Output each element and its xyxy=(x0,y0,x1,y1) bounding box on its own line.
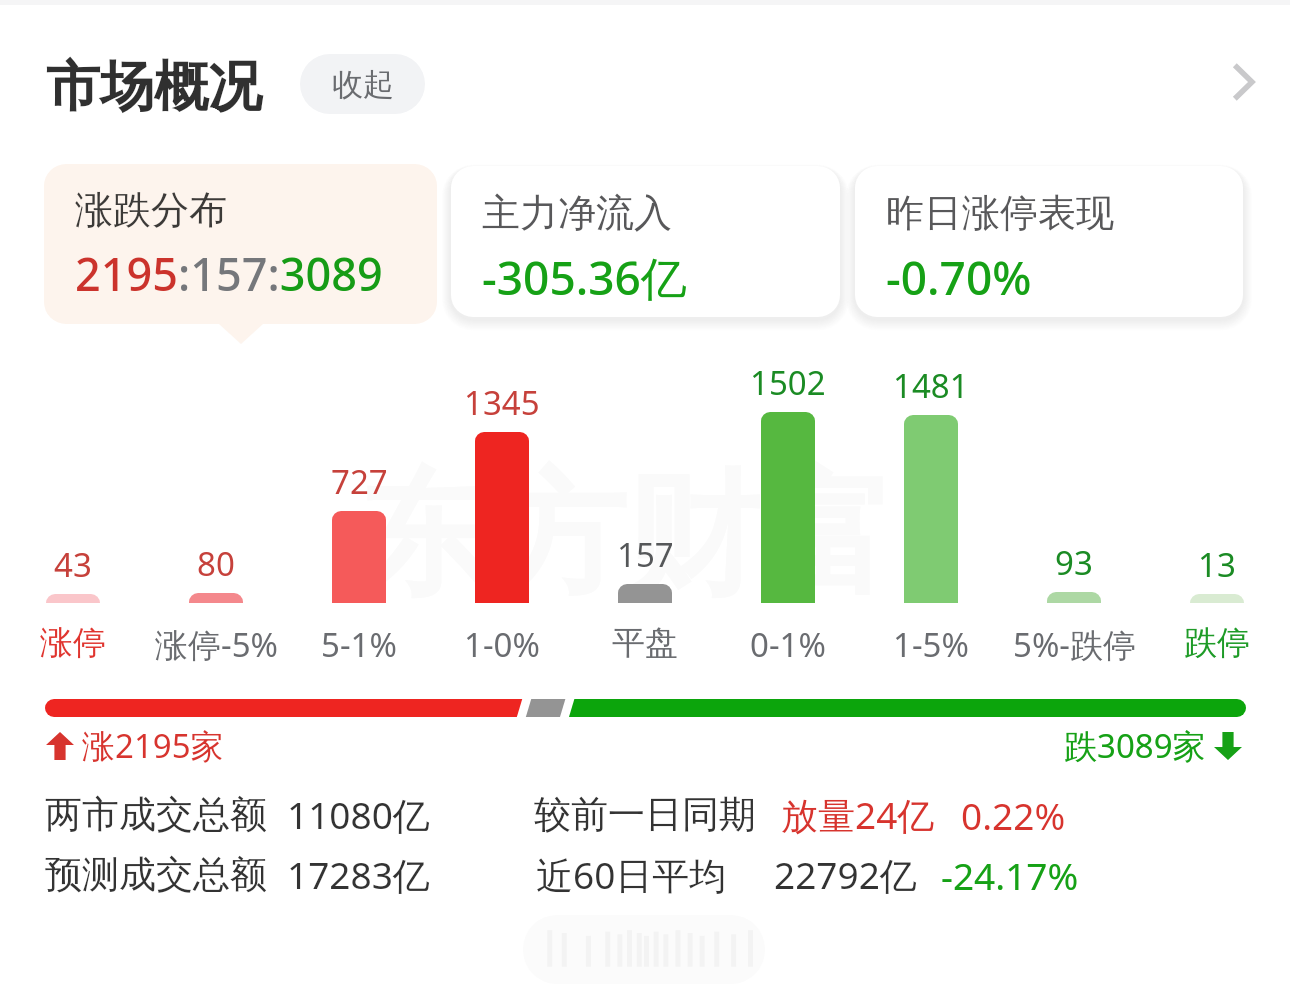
staticText: -305.36亿 xyxy=(482,246,687,309)
staticText: 跌3089家 xyxy=(1064,723,1206,768)
staticText: 0-1% xyxy=(750,622,826,667)
staticText: 13 xyxy=(1198,542,1236,587)
staticText: 1345 xyxy=(464,380,540,425)
staticText: 东方财富 xyxy=(358,452,894,621)
staticText: 两市成交总额 xyxy=(45,791,267,838)
button[interactable]: 昨日涨停表现 xyxy=(855,166,1243,317)
staticText: 近60日平均 xyxy=(536,849,727,900)
staticText: 预测成交总额 xyxy=(45,851,267,898)
staticText: 0.22% xyxy=(961,790,1066,840)
staticText: 涨2195家 xyxy=(82,723,224,768)
staticText: 1481 xyxy=(893,363,969,408)
staticText: 较前一日同期 xyxy=(534,791,756,838)
staticText: 1502 xyxy=(750,360,826,405)
staticText: 主力净流入 xyxy=(482,189,672,237)
staticText: 市场概况 xyxy=(46,53,262,121)
staticText: 2195:157:3089 xyxy=(75,243,383,304)
staticText: 收起 xyxy=(332,65,394,104)
staticText: 平盘 xyxy=(612,622,678,664)
staticText: 放量24亿 xyxy=(781,789,935,840)
staticText: 涨停 xyxy=(40,622,106,664)
button[interactable]: 主力净流入 xyxy=(451,166,840,317)
staticText: 涨停-5% xyxy=(155,622,278,667)
staticText: 涨跌分布 xyxy=(75,186,227,234)
button[interactable]: More xyxy=(1204,42,1284,122)
staticText: 跌停 xyxy=(1184,622,1250,664)
button[interactable]: 跌3089家 xyxy=(1064,723,1242,768)
staticText: 5-1% xyxy=(321,622,397,667)
staticText: 80 xyxy=(197,541,235,586)
button[interactable]: 收起 xyxy=(300,54,425,114)
staticText: 22792亿 xyxy=(774,849,917,900)
staticText: 93 xyxy=(1055,540,1093,585)
staticText: -0.70% xyxy=(886,246,1032,309)
staticText: 1-0% xyxy=(464,622,540,667)
staticText: -24.17% xyxy=(941,850,1079,900)
staticText: 17283亿 xyxy=(287,849,430,900)
staticText: 5%-跌停 xyxy=(1013,622,1136,667)
staticText: 727 xyxy=(331,459,388,504)
staticText: 11080亿 xyxy=(287,789,430,840)
staticText: 157 xyxy=(617,532,674,577)
staticText: 昨日涨停表现 xyxy=(886,189,1114,237)
staticText: 1-5% xyxy=(893,622,969,667)
button[interactable]: 涨跌分布 xyxy=(44,164,437,324)
staticText: 43 xyxy=(54,542,92,587)
button[interactable]: 涨2195家 xyxy=(46,723,224,768)
